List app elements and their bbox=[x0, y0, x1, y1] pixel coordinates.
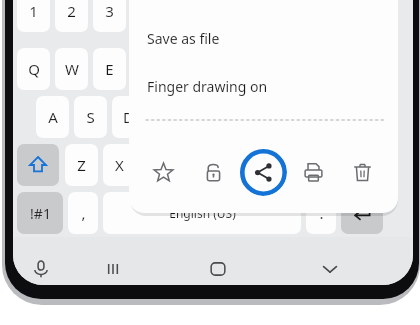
button[interactable]: Y bbox=[207, 48, 240, 90]
staticText: S bbox=[86, 107, 95, 127]
button[interactable]: X bbox=[103, 144, 136, 186]
button[interactable]: S bbox=[74, 96, 107, 138]
button[interactable]: 2 bbox=[55, 0, 88, 32]
staticText: K bbox=[314, 107, 324, 127]
staticText: , bbox=[81, 203, 86, 223]
button[interactable]: Voice input bbox=[21, 249, 61, 285]
button[interactable]: backspace bbox=[331, 144, 373, 186]
button[interactable]: H bbox=[226, 96, 259, 138]
staticText: 1 bbox=[29, 1, 38, 21]
button[interactable]: J bbox=[264, 96, 297, 138]
staticText: G bbox=[199, 107, 210, 127]
staticText: Save as file bbox=[147, 29, 220, 48]
staticText: English (US) bbox=[169, 205, 236, 221]
button[interactable]: Favourite bbox=[139, 148, 187, 196]
staticText: A bbox=[48, 107, 58, 127]
staticText: C bbox=[153, 155, 163, 175]
button[interactable]: Unlock bbox=[189, 148, 237, 196]
button[interactable]: N bbox=[255, 144, 288, 186]
button[interactable]: Delete bbox=[338, 148, 386, 196]
button[interactable]: Z bbox=[65, 144, 98, 186]
staticText: Finger drawing on bbox=[147, 77, 268, 96]
button[interactable]: Save as file bbox=[129, 16, 398, 60]
staticText: . bbox=[319, 203, 324, 223]
button[interactable]: !#1 bbox=[17, 192, 63, 234]
button[interactable]: R bbox=[131, 48, 164, 90]
button[interactable]: Print bbox=[289, 148, 337, 196]
button[interactable]: 3 bbox=[93, 0, 126, 32]
button[interactable]: Hide keyboard bbox=[310, 249, 350, 285]
staticText: M bbox=[303, 155, 317, 175]
staticText: Q bbox=[28, 59, 40, 79]
button[interactable]: M bbox=[293, 144, 326, 186]
staticText: X bbox=[115, 155, 124, 175]
staticText: H bbox=[237, 107, 249, 127]
button[interactable]: Home bbox=[198, 249, 238, 285]
button[interactable]: D bbox=[112, 96, 145, 138]
button[interactable]: E bbox=[93, 48, 126, 90]
button[interactable]: C bbox=[141, 144, 174, 186]
button[interactable]: G bbox=[188, 96, 221, 138]
staticText: 2 bbox=[67, 1, 76, 21]
button[interactable]: U bbox=[245, 48, 278, 90]
button[interactable]: L bbox=[340, 96, 373, 138]
button[interactable]: F bbox=[150, 96, 183, 138]
button[interactable]: Recents bbox=[93, 249, 133, 285]
staticText: E bbox=[105, 59, 114, 79]
button[interactable]: Share bbox=[239, 148, 287, 196]
button[interactable]: B bbox=[217, 144, 250, 186]
button[interactable]: A bbox=[36, 96, 69, 138]
button[interactable]: 1 bbox=[17, 0, 50, 32]
staticText: 3 bbox=[105, 1, 114, 21]
button[interactable]: enter bbox=[341, 192, 383, 234]
button[interactable]: T bbox=[169, 48, 202, 90]
staticText: D bbox=[123, 107, 134, 127]
staticText: !#1 bbox=[30, 204, 51, 223]
button[interactable]: shift bbox=[17, 144, 59, 186]
staticText: Z bbox=[77, 155, 86, 175]
button[interactable]: . bbox=[306, 192, 336, 234]
staticText: L bbox=[353, 107, 361, 127]
button[interactable]: , bbox=[68, 192, 98, 234]
staticText: F bbox=[163, 107, 171, 127]
staticText: W bbox=[65, 59, 79, 79]
button[interactable]: Finger drawing on bbox=[129, 64, 398, 108]
button[interactable]: K bbox=[302, 96, 335, 138]
staticText: J bbox=[278, 107, 283, 127]
button[interactable]: V bbox=[179, 144, 212, 186]
staticText: N bbox=[266, 155, 278, 175]
button[interactable]: W bbox=[55, 48, 88, 90]
button[interactable]: Q bbox=[17, 48, 50, 90]
button[interactable]: English (US) bbox=[103, 192, 301, 234]
